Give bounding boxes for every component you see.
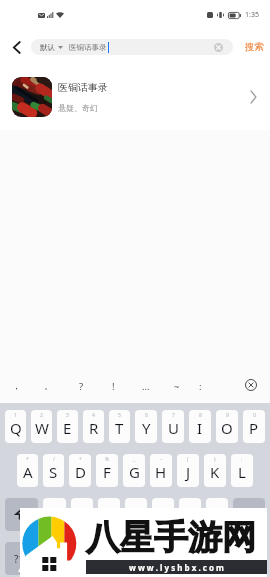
staticText: 搜索 <box>237 553 255 564</box>
button[interactable]: B <box>152 498 174 531</box>
staticText: w w w . l y s h b x . c o m <box>129 562 224 573</box>
staticText: D <box>75 462 86 482</box>
button[interactable]: _ <box>123 454 145 487</box>
staticText: T <box>115 418 124 438</box>
staticText: 3 <box>66 412 69 419</box>
staticText: 6 <box>145 412 148 419</box>
button[interactable]: ~ <box>168 376 186 396</box>
button[interactable]: X <box>71 498 93 531</box>
button[interactable]: Clear text <box>214 43 223 52</box>
button[interactable]: 搜索 <box>245 41 264 53</box>
staticText: Z <box>50 506 59 526</box>
staticText: ?123 <box>14 552 36 566</box>
button[interactable]: : <box>231 454 253 487</box>
staticText: 搜索 <box>245 41 264 53</box>
button[interactable]: C <box>98 498 120 531</box>
button[interactable]: ， <box>8 376 26 396</box>
button[interactable]: … <box>137 376 155 396</box>
staticText: 1:35 <box>245 10 259 20</box>
staticText: 5 <box>118 412 121 419</box>
button[interactable]: 。 <box>40 376 58 396</box>
button[interactable]: 中文 <box>80 542 191 575</box>
staticText: O <box>221 418 233 438</box>
button[interactable]: Hide keyboard <box>245 379 257 391</box>
button[interactable]: 0 <box>243 410 265 443</box>
button[interactable]: 1 <box>5 410 26 443</box>
staticText: R <box>89 418 99 438</box>
button[interactable]: Comma <box>49 542 75 575</box>
staticText: B <box>158 506 168 526</box>
staticText: U <box>168 418 179 438</box>
staticText: L <box>238 462 246 482</box>
staticText: P <box>249 418 259 438</box>
button[interactable]: : <box>191 376 209 396</box>
staticText: K <box>210 462 220 482</box>
staticText: 4 <box>92 412 95 419</box>
button[interactable]: ) <box>204 454 226 487</box>
button[interactable]: - <box>150 454 172 487</box>
button[interactable]: + <box>69 454 91 487</box>
staticText: % <box>105 456 110 463</box>
button[interactable]: Symbols <box>5 542 44 575</box>
staticText: ( <box>187 456 189 463</box>
button[interactable]: 6 <box>135 410 157 443</box>
button[interactable]: 医铜话事录 <box>0 64 270 130</box>
staticText: J <box>186 462 191 482</box>
staticText: H <box>155 462 167 482</box>
button[interactable]: Backspace <box>233 498 265 531</box>
button[interactable]: * <box>17 454 38 487</box>
staticText: I <box>197 418 203 438</box>
staticText: 八星手游网 <box>86 516 256 559</box>
staticText: Y <box>142 418 151 438</box>
staticText: 中文 <box>127 553 145 564</box>
button[interactable]: ( <box>177 454 199 487</box>
staticText: + <box>79 456 82 463</box>
staticText: G <box>129 462 140 482</box>
staticText: 医铜话事录 <box>58 81 108 94</box>
staticText: ) <box>214 456 216 463</box>
staticText: N <box>184 506 196 526</box>
staticText: 默认 <box>40 43 55 52</box>
staticText: 2 <box>40 412 43 419</box>
button[interactable]: / <box>43 454 64 487</box>
button[interactable]: 2 <box>31 410 52 443</box>
button[interactable]: 3 <box>57 410 78 443</box>
staticText: : <box>241 456 243 463</box>
staticText: F <box>103 462 111 482</box>
button[interactable]: 5 <box>109 410 130 443</box>
staticText: 0 <box>253 412 256 419</box>
staticText: 8 <box>199 412 202 419</box>
staticText: … <box>142 380 150 393</box>
staticText: / <box>53 456 55 463</box>
staticText: ? <box>79 380 84 393</box>
staticText: C <box>104 506 114 526</box>
button[interactable]: V <box>125 498 147 531</box>
staticText: 1 <box>14 412 17 419</box>
staticText: 9 <box>226 412 229 419</box>
button[interactable]: ! <box>104 376 122 396</box>
button[interactable]: Period <box>196 542 222 575</box>
button[interactable]: 8 <box>189 410 211 443</box>
staticText: S <box>49 462 58 482</box>
button[interactable]: Back <box>8 38 26 56</box>
button[interactable]: ? <box>72 376 90 396</box>
staticText: _ <box>133 456 136 463</box>
button[interactable]: 4 <box>83 410 104 443</box>
button[interactable]: Search <box>227 542 265 575</box>
staticText: ! <box>112 380 115 393</box>
button[interactable]: 7 <box>162 410 184 443</box>
staticText: 。 <box>204 552 214 565</box>
staticText: * <box>26 456 29 463</box>
staticText: A <box>23 462 33 482</box>
staticText: - <box>160 456 162 463</box>
button[interactable]: Z <box>43 498 66 531</box>
button[interactable]: % <box>96 454 118 487</box>
staticText: ， <box>12 380 22 392</box>
button[interactable]: M <box>206 498 228 531</box>
button[interactable]: N <box>179 498 201 531</box>
button[interactable]: 9 <box>216 410 238 443</box>
staticText: 悬疑、奇幻 <box>58 103 98 113</box>
button[interactable]: Shift <box>5 498 38 531</box>
staticText: 医铜话事录 <box>69 43 107 52</box>
